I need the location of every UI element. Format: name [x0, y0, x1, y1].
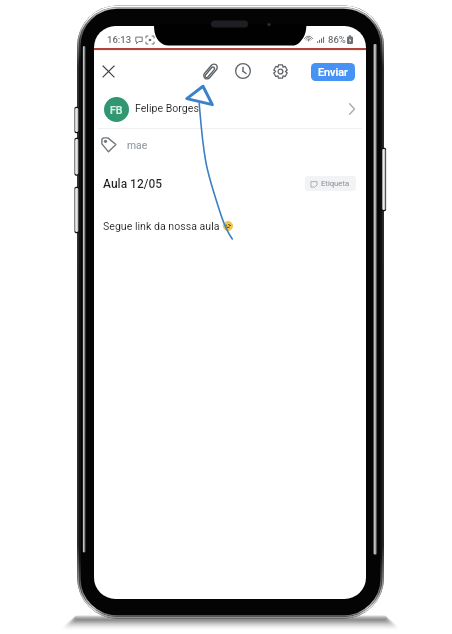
staticText: 86%	[328, 34, 346, 45]
button[interactable]: Anexar arquivo	[195, 56, 225, 86]
button[interactable]: Enviar	[311, 63, 355, 81]
staticText: mae	[127, 139, 148, 151]
button[interactable]: Etiqueta	[305, 176, 356, 191]
button[interactable]: Agendar envio	[228, 56, 258, 86]
staticText: Enviar	[318, 66, 348, 79]
staticText: Aula 12/05	[103, 177, 163, 191]
staticText: Felipe Borges	[135, 102, 199, 114]
staticText: FB	[110, 104, 123, 116]
button[interactable]: mae	[94, 131, 366, 160]
button[interactable]: Configuracoes	[265, 56, 295, 86]
staticText: Segue link da nossa aula	[103, 220, 220, 232]
button[interactable]: Fechar	[93, 56, 123, 86]
button[interactable]: FB	[94, 93, 366, 127]
staticText: Etiqueta	[321, 179, 350, 188]
staticText: 16:13	[107, 34, 132, 45]
